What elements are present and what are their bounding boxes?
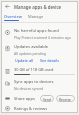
button[interactable]: Manage xyxy=(28,12,44,20)
button[interactable]: 30 GB of 118 GB used xyxy=(4,67,75,75)
staticText: Overview xyxy=(4,14,22,19)
staticText: Updates available xyxy=(14,44,49,50)
staticText: Manage apps & device xyxy=(14,4,62,10)
staticText: No devices synced xyxy=(14,86,44,91)
staticText: 30 GB of 118 GB used xyxy=(14,67,54,72)
staticText: Sync apps to devices xyxy=(14,79,54,85)
staticText: See details xyxy=(40,58,59,63)
button[interactable]: Back xyxy=(3,2,12,11)
button[interactable]: Receive xyxy=(56,95,75,102)
staticText: Update all xyxy=(15,58,33,63)
staticText: All updates pending xyxy=(14,51,46,56)
button[interactable]: No harmful apps found xyxy=(4,28,75,40)
button[interactable]: Ratings & reviews xyxy=(4,106,75,111)
staticText: Manage xyxy=(28,14,44,19)
staticText: No harmful apps found xyxy=(14,28,59,34)
staticText: Play Protect scanned 4 minutes ago xyxy=(14,35,71,40)
button[interactable]: Updates available xyxy=(4,44,75,63)
staticText: Ratings & reviews xyxy=(14,106,48,111)
staticText: Receive xyxy=(59,97,72,101)
button[interactable]: See details xyxy=(39,58,60,63)
staticText: Share apps xyxy=(14,96,35,101)
button[interactable]: Update all xyxy=(14,58,34,63)
button[interactable]: Sync apps to devices xyxy=(4,79,75,91)
staticText: Send xyxy=(43,97,51,101)
button[interactable]: Overview xyxy=(4,12,22,20)
button[interactable]: Send xyxy=(40,95,54,102)
